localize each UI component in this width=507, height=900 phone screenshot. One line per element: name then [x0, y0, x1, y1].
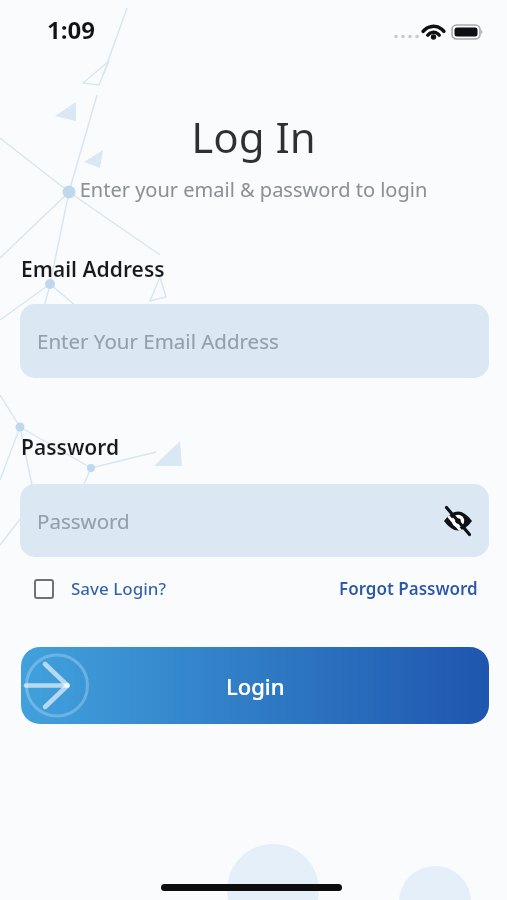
staticText: Enter your email & password to login — [0, 176, 507, 203]
staticText: Save Login? — [71, 577, 167, 600]
button[interactable]: Login — [21, 647, 489, 724]
staticText: 1:09 — [47, 13, 95, 46]
staticText: Login — [226, 671, 285, 701]
button[interactable]: Save Login? — [34, 577, 167, 600]
staticText: Enter Your Email Address — [37, 327, 279, 355]
button[interactable]: Enter Your Email Address — [20, 304, 489, 378]
staticText: Password — [21, 433, 120, 462]
staticText: Password — [37, 507, 130, 535]
staticText: Log In — [0, 108, 507, 165]
button[interactable]: Password — [20, 484, 489, 557]
button[interactable]: Forgot Password — [339, 577, 478, 600]
staticText: Email Address — [21, 255, 165, 284]
